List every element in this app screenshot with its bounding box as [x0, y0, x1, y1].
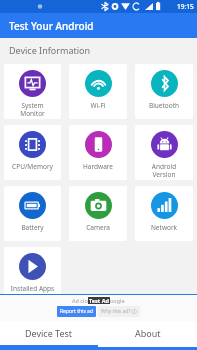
staticText: About: [135, 327, 161, 339]
staticText: Camera: [69, 223, 127, 232]
staticText: Report this ad: [60, 308, 93, 315]
button[interactable]: Battery: [4, 186, 61, 241]
staticText: oogle: [110, 297, 125, 304]
staticText: Device Information: [9, 44, 91, 56]
staticText: CPU/Memory: [4, 162, 61, 171]
button[interactable]: Bluetooth: [135, 64, 193, 119]
staticText: 19:15: [177, 2, 194, 11]
button[interactable]: System Monitor: [4, 64, 61, 119]
button[interactable]: About: [98, 321, 197, 345]
staticText: Battery: [4, 223, 61, 232]
button[interactable]: Installed Apps: [4, 247, 61, 302]
staticText: Android Version: [135, 162, 193, 179]
button[interactable]: Hardware: [69, 125, 127, 180]
staticText: Test Your Android: [9, 19, 94, 33]
staticText: Device Test: [25, 327, 73, 339]
button[interactable]: Why this ad? ⓘ: [98, 306, 140, 317]
staticText: Why this ad? ⓘ: [101, 308, 137, 315]
button[interactable]: Android Version: [135, 125, 193, 180]
staticText: Hardware: [69, 162, 127, 171]
button[interactable]: Device Test: [0, 321, 98, 345]
staticText: Ad clo: [72, 297, 88, 304]
staticText: Wi-Fi: [69, 101, 127, 110]
staticText: Bluetooth: [135, 101, 193, 110]
staticText: Network: [135, 223, 193, 232]
staticText: Test Ad: [89, 297, 109, 304]
button[interactable]: Network: [135, 186, 193, 241]
staticText: Installed Apps: [4, 284, 61, 293]
staticText: System Monitor: [4, 101, 61, 118]
button[interactable]: Report this ad: [57, 306, 96, 317]
button[interactable]: CPU/Memory: [4, 125, 61, 180]
button[interactable]: Wi-Fi: [69, 64, 127, 119]
button[interactable]: Camera: [69, 186, 127, 241]
